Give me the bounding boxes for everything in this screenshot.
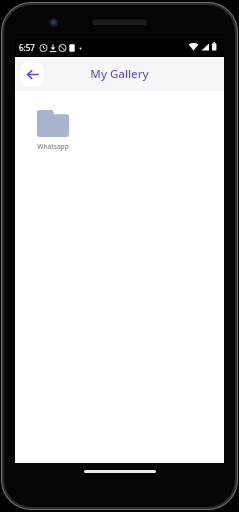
staticText: 6:57: [19, 42, 35, 53]
button[interactable]: Whatsapp: [27, 110, 79, 151]
staticText: My Gallery: [90, 66, 149, 82]
button[interactable]: Back: [20, 62, 44, 86]
staticText: Whatsapp: [37, 142, 69, 151]
